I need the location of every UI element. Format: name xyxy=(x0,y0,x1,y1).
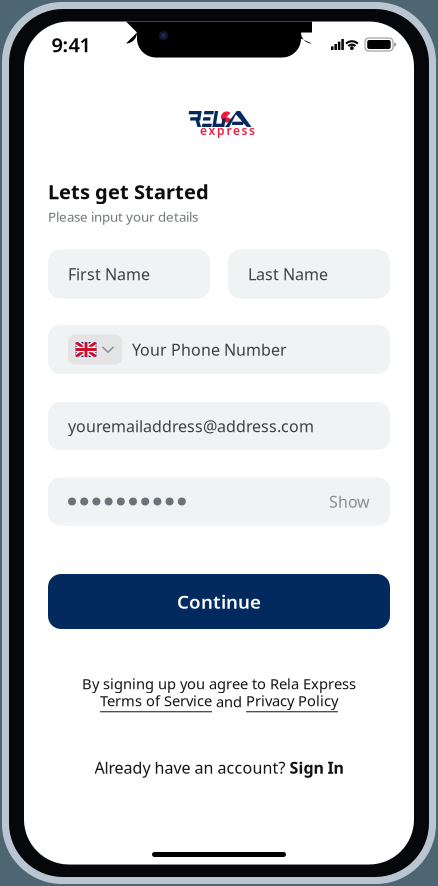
button[interactable]: Show xyxy=(48,477,390,525)
staticText: s xyxy=(249,122,255,138)
staticText: Continue xyxy=(177,589,261,614)
staticText: Lets get Started xyxy=(48,178,209,205)
button[interactable]: First Name xyxy=(48,249,210,298)
button[interactable]: Your Phone Number xyxy=(48,325,390,374)
staticText: e xyxy=(200,122,207,138)
button[interactable]: youremailaddress@address.com xyxy=(48,402,390,450)
staticText: Sign In xyxy=(289,757,343,778)
button[interactable]: Last Name xyxy=(228,249,390,298)
staticText: Already have an account? xyxy=(94,757,289,778)
staticText: e xyxy=(233,122,240,138)
button[interactable]: Already have an account? xyxy=(94,757,343,778)
staticText: s xyxy=(241,122,247,138)
staticText: youremailaddress@address.com xyxy=(68,415,314,437)
staticText: p xyxy=(217,122,225,138)
staticText: Please input your details xyxy=(48,208,198,225)
staticText: Last Name xyxy=(248,263,328,285)
staticText: First Name xyxy=(68,263,150,285)
staticText: Privacy Policy xyxy=(246,691,338,710)
staticText: Show xyxy=(329,491,370,512)
staticText: and xyxy=(212,692,246,711)
staticText: Your Phone Number xyxy=(132,339,287,360)
staticText: By signing up you agree to Rela Express xyxy=(82,674,356,693)
button[interactable]: Continue xyxy=(48,574,390,629)
staticText: Terms of Service xyxy=(100,691,212,710)
staticText: 9:41 xyxy=(51,31,90,58)
button[interactable]: Terms of Service xyxy=(100,691,212,712)
staticText: x xyxy=(208,122,215,138)
button[interactable]: Privacy Policy xyxy=(246,691,338,712)
staticText: r xyxy=(226,122,231,138)
